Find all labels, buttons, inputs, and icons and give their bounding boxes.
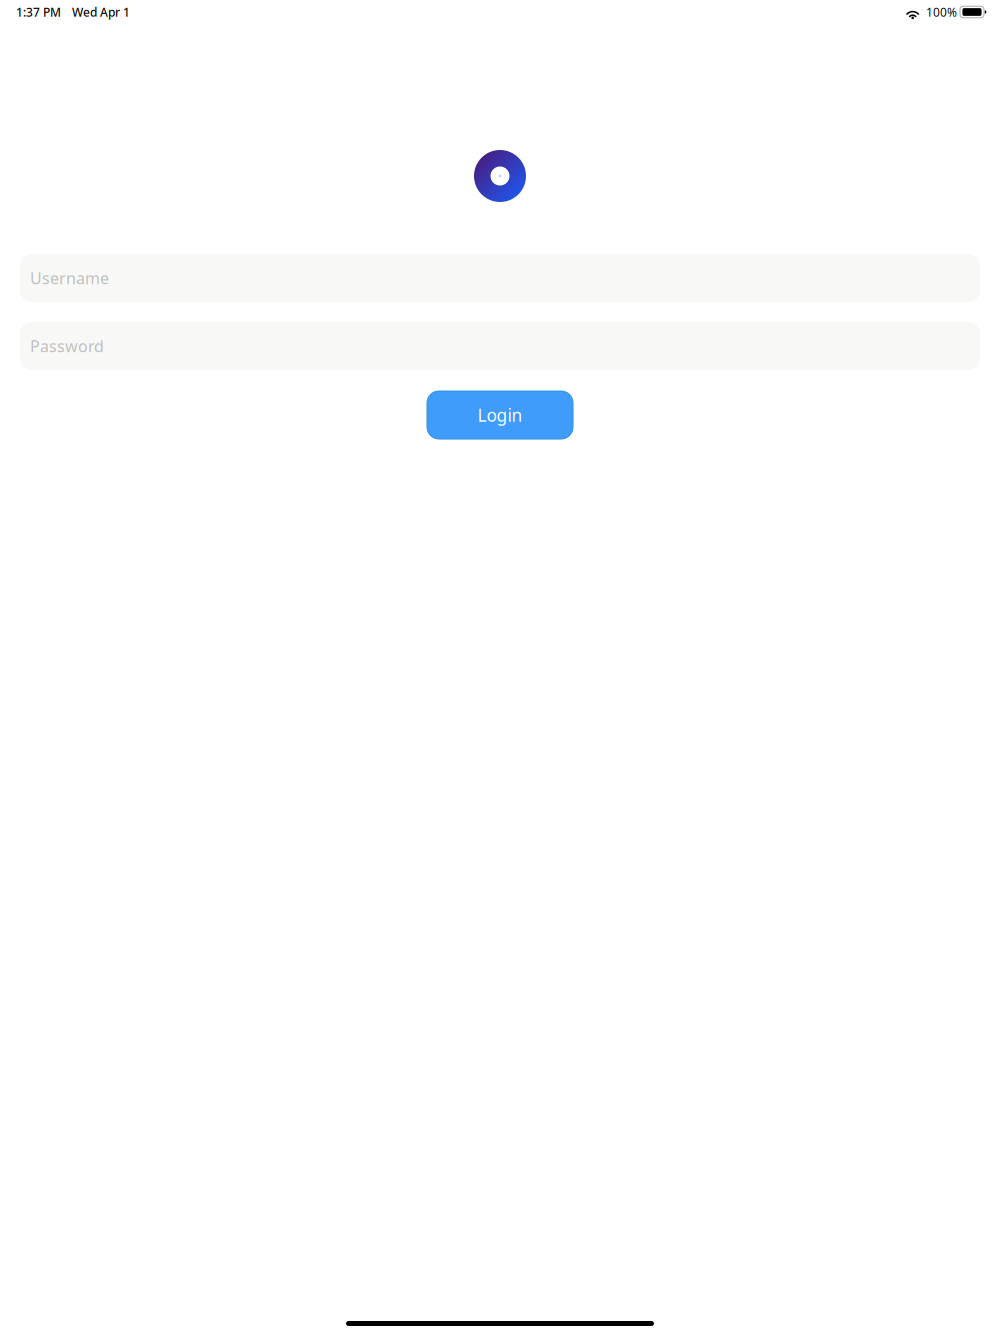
button[interactable]: Login	[427, 391, 573, 439]
button[interactable]: Password	[20, 322, 980, 370]
staticText: Wed Apr 1	[72, 4, 130, 20]
staticText: 1:37 PM	[16, 4, 61, 20]
staticText: 100%	[926, 4, 957, 20]
staticText: Login	[477, 403, 522, 426]
button[interactable]: Username	[20, 254, 980, 302]
staticText: Username	[30, 267, 109, 289]
staticText: Password	[30, 335, 104, 357]
